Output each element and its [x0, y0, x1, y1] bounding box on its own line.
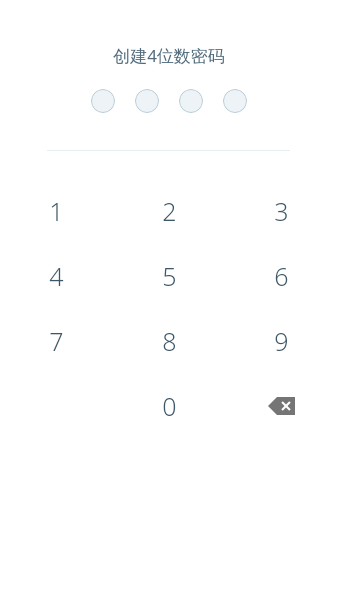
button[interactable]: 3 — [225, 178, 337, 243]
staticText: 9 — [274, 324, 289, 358]
button[interactable]: 8 — [113, 308, 225, 373]
staticText: 3 — [274, 194, 289, 228]
button[interactable]: 9 — [225, 308, 337, 373]
staticText: 8 — [162, 324, 177, 358]
button[interactable]: 6 — [225, 243, 337, 308]
staticText: 1 — [49, 194, 64, 228]
button[interactable]: 2 — [113, 178, 225, 243]
button[interactable]: Backspace — [225, 373, 337, 438]
staticText: 4 — [49, 259, 64, 293]
button[interactable]: 1 — [0, 178, 113, 243]
staticText: 6 — [274, 259, 289, 293]
button[interactable]: 5 — [113, 243, 225, 308]
staticText: 创建4位数密码 — [113, 44, 225, 67]
button[interactable]: 4 — [0, 243, 113, 308]
staticText: 5 — [162, 259, 177, 293]
staticText: 7 — [49, 324, 64, 358]
button[interactable]: 7 — [0, 308, 113, 373]
staticText: 2 — [162, 194, 177, 228]
staticText: 0 — [162, 389, 177, 423]
button[interactable]: 0 — [113, 373, 225, 438]
